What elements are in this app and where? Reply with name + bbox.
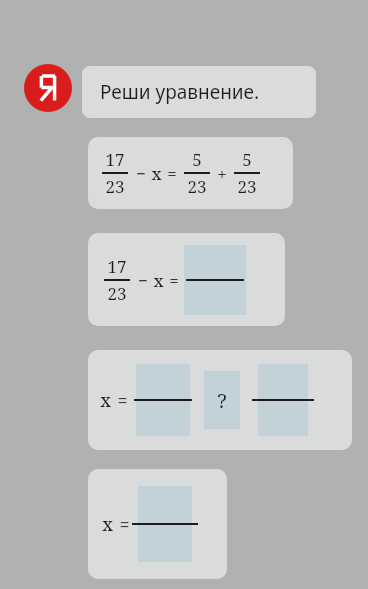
staticText: 5 (242, 148, 252, 171)
staticText: 23 (237, 175, 257, 198)
staticText: x (100, 388, 111, 413)
staticText: x (102, 512, 113, 537)
staticText: = (169, 269, 179, 292)
staticText: 23 (187, 175, 207, 198)
staticText: Реши уравнение. (100, 79, 260, 105)
button[interactable]: Яндекс (24, 64, 72, 112)
staticText: = (167, 162, 177, 185)
staticText: x (153, 269, 164, 292)
staticText: 23 (107, 282, 127, 305)
staticText: = (117, 388, 128, 413)
button[interactable]: Реши уравнение. (82, 66, 316, 118)
button[interactable]: Поле для ответа (184, 245, 246, 315)
staticText: 5 (192, 148, 202, 171)
button[interactable]: 17 (88, 137, 293, 209)
staticText: 17 (105, 148, 125, 171)
staticText: − (136, 162, 146, 185)
staticText: x (151, 162, 162, 185)
staticText: ? (217, 387, 227, 414)
button[interactable]: Поле для знака (204, 371, 240, 429)
staticText: 23 (105, 175, 125, 198)
button[interactable]: Поле для ответа (134, 364, 192, 436)
button[interactable]: x (88, 469, 227, 579)
staticText: = (119, 512, 130, 537)
staticText: 17 (107, 255, 127, 278)
button[interactable]: Поле для ответа (252, 364, 314, 436)
staticText: + (217, 162, 227, 185)
button[interactable]: 17 (88, 233, 285, 326)
button[interactable]: Поле для ответа (132, 486, 198, 562)
button[interactable]: x (88, 350, 352, 450)
staticText: − (138, 269, 148, 292)
